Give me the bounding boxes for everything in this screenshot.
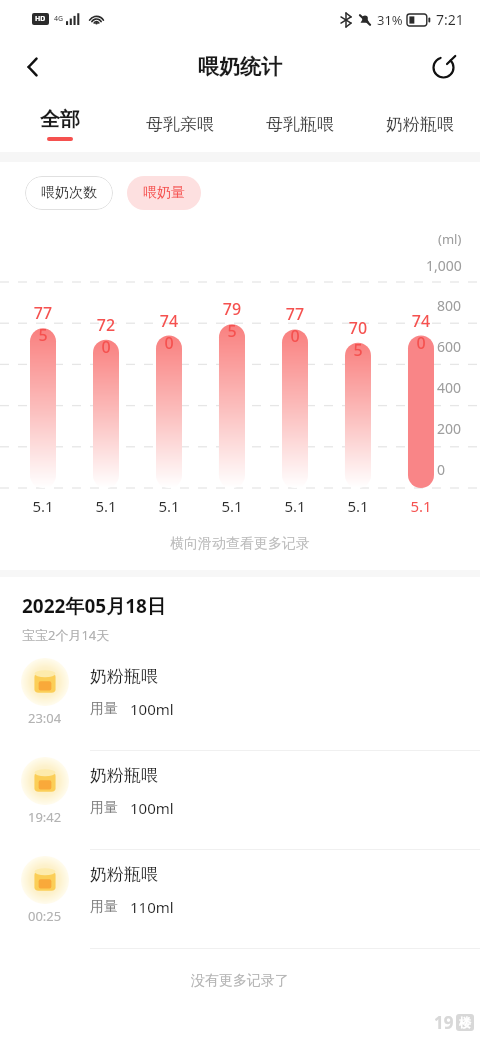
staticText: 用量 [90, 898, 118, 916]
staticText: 用量 [90, 700, 118, 718]
staticText: 1,000 [426, 256, 462, 275]
button[interactable]: 全部 [0, 96, 120, 152]
staticText: 5.12 [30, 496, 56, 518]
staticText: 200 [437, 419, 462, 438]
button[interactable]: 喂奶次数 [25, 176, 113, 210]
staticText: 奶粉瓶喂 [386, 114, 454, 135]
staticText: 用量 [90, 799, 118, 817]
staticText: 740 [156, 310, 182, 354]
button[interactable]: 19:42 [0, 751, 480, 850]
staticText: 横向滑动查看更多记录 [170, 535, 310, 553]
staticText: 喂奶次数 [41, 184, 97, 202]
staticText: 31% [377, 11, 403, 29]
staticText: 喂奶量 [143, 184, 185, 202]
staticText: 5.17 [345, 496, 371, 518]
staticText: 705 [345, 317, 371, 361]
staticText: 770 [282, 303, 308, 347]
staticText: 00:25 [28, 907, 62, 925]
staticText: 7:21 [436, 10, 464, 29]
button[interactable]: Share [420, 44, 466, 90]
button[interactable]: 喂奶量 [127, 176, 201, 210]
staticText: 没有更多记录了 [191, 972, 289, 990]
staticText: 100ml [130, 798, 174, 818]
button[interactable]: 母乳瓶喂 [240, 96, 360, 152]
staticText: 110ml [130, 897, 174, 917]
staticText: (ml) [438, 230, 462, 248]
staticText: 5.15 [219, 496, 245, 518]
staticText: 0 [437, 460, 446, 479]
staticText: 宝宝2个月14天 [22, 626, 110, 644]
button[interactable]: 23:04 [0, 652, 480, 751]
staticText: 喂奶统计 [198, 54, 282, 80]
staticText: 奶粉瓶喂 [90, 666, 158, 687]
staticText: 600 [437, 337, 462, 356]
button[interactable]: 母乳亲喂 [120, 96, 240, 152]
staticText: 5.13 [93, 496, 119, 518]
staticText: 楼 [459, 1015, 471, 1030]
staticText: 740 [408, 310, 434, 354]
staticText: 19:42 [28, 808, 62, 826]
staticText: 4G [54, 14, 64, 24]
staticText: 400 [437, 378, 462, 397]
button[interactable]: 奶粉瓶喂 [360, 96, 480, 152]
staticText: 23:04 [28, 709, 62, 727]
staticText: 全部 [40, 107, 80, 132]
staticText: 800 [437, 296, 462, 315]
staticText: 795 [219, 298, 245, 342]
staticText: 720 [93, 314, 119, 358]
staticText: 5.16 [282, 496, 308, 518]
staticText: 19 [434, 1011, 454, 1034]
staticText: 奶粉瓶喂 [90, 864, 158, 885]
staticText: 2022年05月18日 [22, 593, 166, 619]
staticText: 5.18 [408, 496, 434, 518]
staticText: 奶粉瓶喂 [90, 765, 158, 786]
staticText: 5.14 [156, 496, 182, 518]
staticText: 775 [30, 302, 56, 346]
staticText: 100ml [130, 699, 174, 719]
button[interactable]: Back [10, 44, 56, 90]
staticText: 母乳瓶喂 [266, 114, 334, 135]
button[interactable]: 00:25 [0, 850, 480, 949]
staticText: 母乳亲喂 [146, 114, 214, 135]
staticText: HD [35, 14, 46, 24]
